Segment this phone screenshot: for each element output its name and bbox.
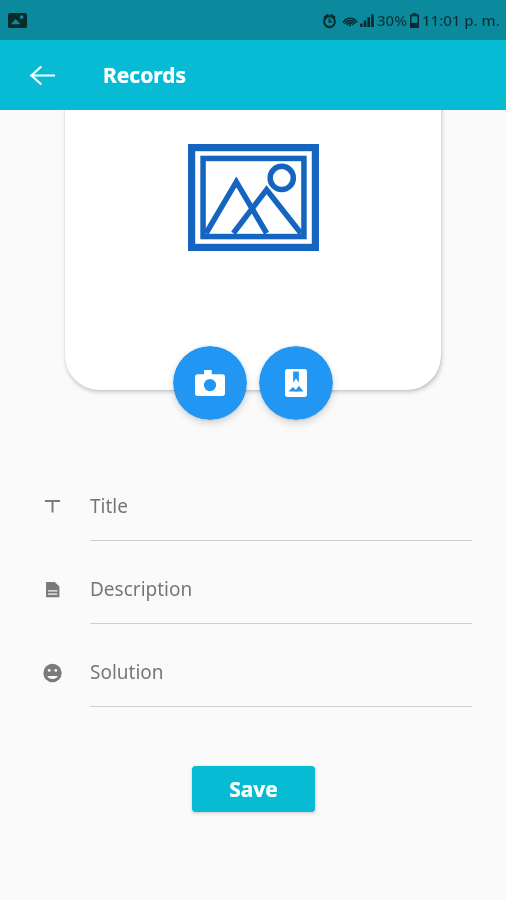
staticText: Solution [90,659,164,685]
button[interactable]: Back [18,51,66,99]
staticText: Description [90,576,193,602]
button[interactable]: Take photo with camera [173,346,247,420]
button[interactable]: Save [192,766,315,812]
staticText: Title [90,493,128,519]
staticText: 11:01 p. m. [422,10,500,30]
staticText: Save [229,775,278,804]
button[interactable]: Description [0,561,506,644]
staticText: Records [103,61,187,90]
staticText: 30% [377,10,407,30]
button[interactable]: Title [0,478,506,561]
button[interactable]: Solution [0,644,506,727]
button[interactable]: Choose photo from gallery [259,346,333,420]
